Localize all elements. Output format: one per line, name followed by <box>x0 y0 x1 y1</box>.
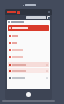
button[interactable] <box>8 25 49 31</box>
button[interactable] <box>8 33 49 39</box>
button[interactable]: Logo <box>17 11 20 14</box>
button[interactable] <box>8 47 49 53</box>
button[interactable] <box>8 68 49 73</box>
button[interactable] <box>8 75 49 80</box>
button[interactable]: Account <box>47 16 50 19</box>
button[interactable]: Home <box>26 92 31 97</box>
button[interactable]: Search <box>26 16 46 19</box>
button[interactable] <box>8 54 49 60</box>
button[interactable] <box>8 40 49 46</box>
button[interactable] <box>8 62 49 67</box>
